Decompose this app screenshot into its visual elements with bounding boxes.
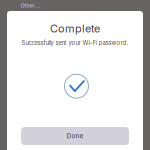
staticText: Successfully sent your Wi-Fi password. bbox=[21, 39, 128, 46]
staticText: Other... bbox=[20, 2, 40, 9]
button[interactable]: Done bbox=[21, 127, 129, 145]
staticText: Done bbox=[66, 132, 83, 140]
staticText: Complete bbox=[50, 22, 100, 35]
